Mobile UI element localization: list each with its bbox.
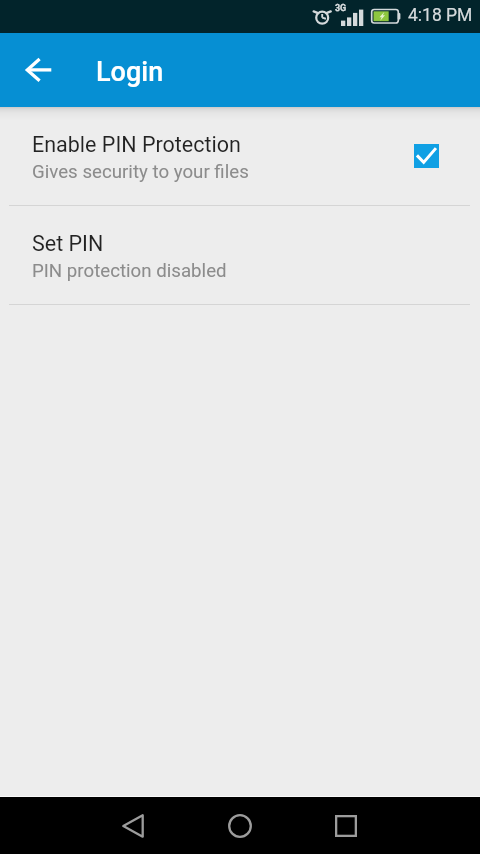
staticText: 3G	[335, 3, 347, 14]
button[interactable]: Home	[216, 802, 264, 850]
button[interactable]: Navigate up	[13, 46, 61, 94]
button[interactable]: Recent apps	[322, 802, 370, 850]
staticText: Enable PIN Protection	[32, 132, 241, 157]
staticText: 4:18 PM	[408, 5, 473, 26]
button[interactable]: Set PIN	[0, 206, 480, 304]
button[interactable]: Enable PIN Protection	[0, 107, 480, 205]
staticText: Login	[96, 56, 164, 88]
staticText: Set PIN	[32, 231, 104, 256]
staticText: PIN protection disabled	[32, 260, 227, 282]
button[interactable]: Toggle PIN protection	[414, 144, 439, 168]
staticText: Gives security to your files	[32, 161, 249, 183]
button[interactable]: Back	[109, 802, 157, 850]
